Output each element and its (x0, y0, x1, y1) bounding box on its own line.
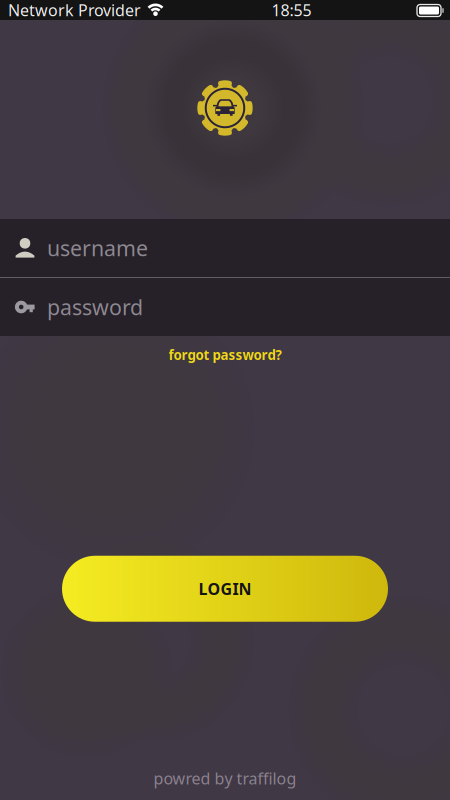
button[interactable]: password (0, 278, 450, 336)
staticText: password (47, 293, 143, 321)
staticText: powred by traffilog (153, 768, 296, 789)
staticText: forgot password? (168, 346, 281, 364)
staticText: 18:55 (271, 0, 311, 21)
staticText: Network Provider (8, 0, 141, 21)
button[interactable]: username (0, 219, 450, 277)
button[interactable]: forgot password? (154, 336, 295, 372)
staticText: username (47, 234, 148, 262)
button[interactable]: LOGIN (62, 556, 388, 622)
staticText: LOGIN (198, 578, 251, 599)
